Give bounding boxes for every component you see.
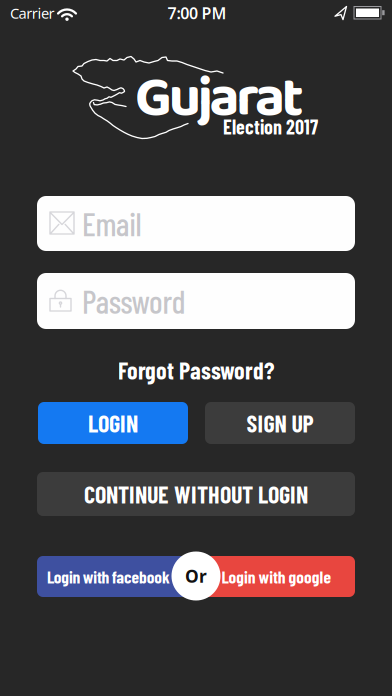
button[interactable]: Forgot Password?	[118, 356, 274, 384]
staticText: Password	[82, 282, 186, 320]
button[interactable]: Password	[37, 273, 355, 329]
button[interactable]: LOGIN	[38, 402, 188, 444]
button[interactable]: Login with facebook	[37, 556, 196, 597]
staticText: Email	[82, 204, 142, 243]
button[interactable]: CONTINUE WITHOUT LOGIN	[37, 472, 355, 516]
staticText: Login with facebook	[47, 566, 170, 587]
staticText: Gujarat	[135, 54, 304, 144]
staticText: Forgot Password?	[118, 356, 274, 384]
staticText: CONTINUE WITHOUT LOGIN	[84, 480, 308, 508]
staticText: 7:00 PM	[168, 2, 226, 24]
button[interactable]: Login with google	[196, 556, 355, 597]
staticText: LOGIN	[88, 409, 138, 437]
button[interactable]: Email	[37, 196, 355, 251]
staticText: Carrier	[10, 3, 55, 23]
staticText: Login with google	[222, 566, 331, 587]
staticText: Or	[185, 564, 207, 587]
staticText: Election 2017	[223, 114, 318, 138]
button[interactable]: SIGN UP	[205, 402, 355, 444]
staticText: SIGN UP	[246, 409, 313, 437]
